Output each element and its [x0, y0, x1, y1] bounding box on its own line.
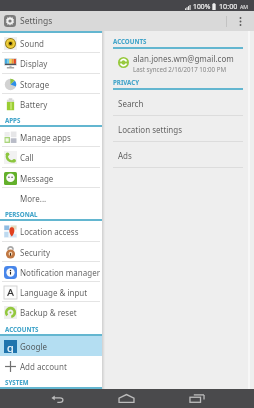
- button[interactable]: Language & input: [0, 282, 102, 302]
- button[interactable]: Home: [106, 389, 147, 408]
- staticText: Call: [20, 152, 34, 163]
- staticText: Last synced 2/16/2017 10:00 PM: [133, 65, 227, 73]
- staticText: AM: [240, 3, 249, 10]
- button[interactable]: Recent apps: [176, 389, 217, 408]
- staticText: Google: [20, 341, 47, 352]
- button[interactable]: Storage: [0, 74, 102, 94]
- button[interactable]: Back: [38, 389, 79, 408]
- staticText: 10:00: [219, 1, 238, 11]
- staticText: Settings: [20, 15, 53, 27]
- button[interactable]: Search: [102, 90, 254, 116]
- staticText: Location settings: [118, 124, 183, 135]
- staticText: PRIVACY: [113, 78, 140, 86]
- staticText: Storage: [20, 79, 50, 90]
- staticText: Ads: [118, 150, 132, 161]
- staticText: SYSTEM: [5, 378, 29, 386]
- staticText: Language & input: [20, 287, 88, 298]
- button[interactable]: Call: [0, 147, 102, 168]
- button[interactable]: Sound: [0, 33, 102, 53]
- staticText: Sound: [20, 38, 45, 49]
- button[interactable]: Display: [0, 53, 102, 74]
- button[interactable]: Backup & reset: [0, 302, 102, 323]
- button[interactable]: Ads: [102, 142, 254, 168]
- staticText: Add account: [20, 361, 67, 372]
- staticText: g: [7, 340, 14, 353]
- staticText: Backup & reset: [20, 307, 77, 318]
- staticText: Location access: [20, 226, 79, 237]
- staticText: Message: [20, 173, 54, 184]
- staticText: Battery: [20, 99, 48, 110]
- staticText: ACCOUNTS: [5, 325, 39, 333]
- staticText: 100%: [193, 2, 211, 11]
- button[interactable]: More options: [227, 11, 254, 31]
- button[interactable]: Battery: [0, 94, 102, 114]
- staticText: ACCOUNTS: [113, 37, 147, 45]
- staticText: alan.jones.wm@gmail.com: [133, 53, 234, 64]
- button[interactable]: Location settings: [102, 116, 254, 142]
- staticText: Search: [118, 98, 144, 109]
- staticText: PERSONAL: [5, 210, 38, 218]
- staticText: Manage apps: [20, 132, 71, 143]
- button[interactable]: Add account: [0, 356, 102, 376]
- button[interactable]: Location access: [0, 221, 102, 242]
- staticText: Display: [20, 58, 48, 69]
- staticText: Security: [20, 247, 51, 258]
- button[interactable]: alan.jones.wm@gmail.com: [102, 49, 254, 76]
- button[interactable]: Notification manager: [0, 262, 102, 282]
- button[interactable]: Manage apps: [0, 127, 102, 147]
- staticText: APPS: [5, 116, 21, 124]
- button[interactable]: Message: [0, 168, 102, 188]
- staticText: More...: [20, 193, 47, 204]
- button[interactable]: Security: [0, 242, 102, 262]
- button[interactable]: More...: [0, 188, 102, 208]
- button[interactable]: g: [0, 336, 102, 356]
- staticText: Notification manager: [20, 267, 100, 278]
